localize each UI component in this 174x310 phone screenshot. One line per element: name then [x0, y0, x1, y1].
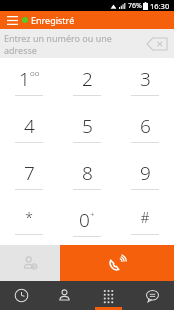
button[interactable]: Menu: [4, 12, 20, 28]
staticText: *: [25, 208, 33, 227]
staticText: #: [140, 208, 150, 227]
button[interactable]: Keypad: [86, 281, 130, 310]
button[interactable]: Contacts: [43, 281, 86, 310]
staticText: 4: [24, 113, 35, 139]
button[interactable]: 9: [116, 151, 174, 198]
staticText: 9: [140, 160, 151, 186]
button[interactable]: 8: [58, 151, 116, 198]
staticText: 2: [82, 66, 93, 92]
staticText: 5: [82, 113, 93, 139]
button[interactable]: 1: [0, 58, 58, 104]
staticText: oo: [30, 67, 40, 78]
button[interactable]: Recents: [0, 281, 43, 310]
staticText: Enregistré: [31, 14, 75, 26]
button[interactable]: Backspace: [143, 33, 171, 55]
button[interactable]: 4: [0, 104, 58, 151]
staticText: Entrez un numéro ou une adresse: [4, 32, 140, 56]
staticText: 16:30: [150, 1, 170, 11]
staticText: 76%: [128, 1, 142, 11]
staticText: 0: [79, 207, 90, 233]
staticText: 1: [19, 66, 30, 92]
button[interactable]: 7: [0, 151, 58, 198]
staticText: 8: [82, 160, 93, 186]
staticText: 7: [24, 160, 35, 186]
button[interactable]: 0: [58, 198, 116, 245]
staticText: +: [90, 208, 95, 219]
button[interactable]: *: [0, 198, 58, 245]
button[interactable]: 3: [116, 58, 174, 104]
button[interactable]: Messages: [130, 281, 174, 310]
button[interactable]: 2: [58, 58, 116, 104]
staticText: 3: [140, 66, 151, 92]
button[interactable]: #: [116, 198, 174, 245]
staticText: 6: [140, 113, 151, 139]
button[interactable]: Call: [60, 245, 174, 281]
button[interactable]: 5: [58, 104, 116, 151]
button[interactable]: Add contact: [0, 245, 60, 281]
button[interactable]: 6: [116, 104, 174, 151]
